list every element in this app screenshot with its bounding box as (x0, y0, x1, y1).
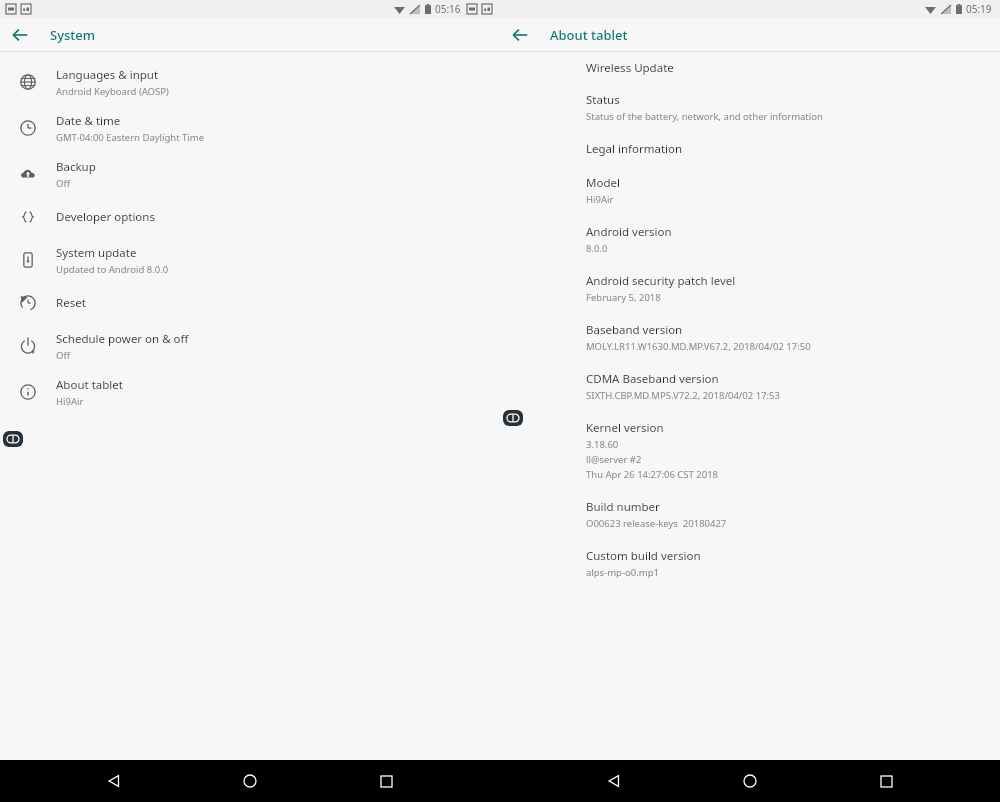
staticText: Build number (586, 499, 660, 515)
staticText: Model (586, 175, 620, 191)
staticText: 3.18.60 (586, 438, 619, 451)
staticText: Custom build version (586, 548, 701, 564)
button[interactable]: Wireless Update (586, 52, 980, 78)
staticText: System (50, 26, 96, 44)
staticText: System update (56, 245, 137, 261)
staticText: Legal information (586, 141, 683, 157)
button[interactable]: Recents (364, 760, 408, 802)
button[interactable]: About tablet (0, 369, 500, 415)
staticText: Languages & input (56, 67, 159, 83)
staticText: GMT-04:00 Eastern Daylight Time (56, 131, 205, 144)
staticText: MOLY.LR11.W1630.MD.MP.V67.2, 2018/04/02 … (586, 340, 811, 353)
staticText: Backup (56, 159, 96, 175)
button[interactable]: Languages & input (0, 59, 500, 105)
staticText: Android version (586, 224, 672, 240)
staticText: February 5, 2018 (586, 291, 661, 304)
staticText: Developer options (56, 209, 155, 225)
staticText: 05:19 (966, 2, 992, 16)
button[interactable]: Custom build version (586, 532, 980, 581)
button[interactable]: Build number (586, 483, 980, 532)
button[interactable]: Back (500, 18, 540, 51)
button[interactable]: CDMA Baseband version (586, 355, 980, 404)
staticText: ll@server #2 (586, 453, 642, 466)
staticText: Status (586, 92, 620, 108)
staticText: Android Keyboard (AOSP) (56, 85, 169, 98)
staticText: SIXTH.CBP.MD.MP5.V72.2, 2018/04/02 17:53 (586, 389, 780, 402)
staticText: Status of the battery, network, and othe… (586, 110, 823, 123)
staticText: About tablet (56, 377, 123, 393)
staticText: Kernel version (586, 420, 664, 436)
staticText: Thu Apr 26 14:27:06 CST 2018 (586, 468, 719, 481)
staticText: 05:16 (435, 2, 461, 16)
button[interactable]: Status (586, 78, 980, 125)
staticText: Off (56, 349, 70, 362)
staticText: Off (56, 177, 70, 190)
button[interactable]: Android security patch level (586, 257, 980, 306)
staticText: 8.0.0 (586, 242, 608, 255)
button[interactable]: Reset (0, 283, 500, 323)
button[interactable]: Multi window (3, 431, 23, 447)
staticText: Hi9Air (586, 193, 614, 206)
staticText: About tablet (550, 26, 628, 44)
button[interactable]: Legal information (586, 125, 980, 159)
staticText: alps-mp-o0.mp1 (586, 566, 659, 579)
button[interactable]: Back (592, 760, 636, 802)
staticText: Wireless Update (586, 60, 674, 76)
button[interactable]: Kernel version (586, 404, 980, 483)
staticText: Baseband version (586, 322, 683, 338)
button[interactable]: Multi window (503, 410, 523, 426)
button[interactable]: Backup (0, 151, 500, 197)
button[interactable]: Schedule power on & off (0, 323, 500, 369)
button[interactable]: Date & time (0, 105, 500, 151)
button[interactable]: Android version (586, 208, 980, 257)
button[interactable]: Home (728, 760, 772, 802)
staticText: Android security patch level (586, 273, 736, 289)
button[interactable]: System update (0, 237, 500, 283)
button[interactable]: Recents (864, 760, 908, 802)
button[interactable]: Back (0, 18, 40, 51)
staticText: Hi9Air (56, 395, 84, 408)
staticText: O00623 release-keys 20180427 (586, 517, 727, 530)
staticText: Date & time (56, 113, 121, 129)
button[interactable]: Back (92, 760, 136, 802)
staticText: Reset (56, 295, 86, 311)
button[interactable]: Model (586, 159, 980, 208)
staticText: Schedule power on & off (56, 331, 189, 347)
staticText: Updated to Android 8.0.0 (56, 263, 169, 276)
staticText: CDMA Baseband version (586, 371, 719, 387)
button[interactable]: Developer options (0, 197, 500, 237)
button[interactable]: Home (228, 760, 272, 802)
button[interactable]: Baseband version (586, 306, 980, 355)
